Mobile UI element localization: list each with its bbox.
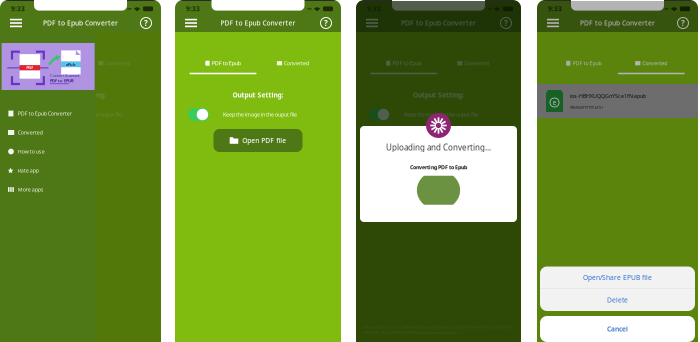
staticText: Output Setting:	[55, 91, 106, 99]
button[interactable]: Keep the image in the output file	[13, 108, 34, 121]
button[interactable]: Keep the image in the output file	[188, 108, 209, 121]
staticText: e	[552, 98, 556, 107]
button[interactable]: Converted	[0, 123, 96, 142]
button[interactable]: Rate app	[0, 161, 96, 180]
staticText: PDF to Epub Converter	[18, 110, 72, 117]
staticText: Document input: /Users/thanhhu/Library/D…	[363, 324, 514, 335]
staticText: Open PDF file	[423, 136, 467, 145]
button[interactable]: Converted	[80, 59, 148, 76]
staticText: How to use	[18, 148, 45, 155]
staticText: Converted	[464, 60, 489, 67]
button[interactable]: Menu	[541, 14, 565, 32]
button[interactable]: PDF to Epub	[369, 59, 438, 76]
staticText: PDF to Epub	[572, 60, 601, 67]
staticText: Output Setting:	[232, 91, 283, 99]
button[interactable]: Converted	[617, 59, 685, 76]
staticText: More apps	[18, 186, 44, 193]
staticText: PDF to EPUB	[50, 78, 74, 83]
button[interactable]: Keep the image in the output file	[369, 108, 390, 121]
staticText: Delete	[607, 296, 628, 304]
staticText: PDF	[26, 65, 33, 70]
staticText: Uploading and Converting...	[386, 142, 491, 153]
button[interactable]: Menu	[360, 14, 384, 32]
staticText: PDF to Epub Converter	[401, 19, 476, 27]
staticText: PDF to Epub	[392, 60, 421, 67]
button[interactable]: Help	[315, 14, 337, 32]
button[interactable]: PDF to Epub Converter	[0, 104, 96, 123]
staticText: 9:33	[186, 4, 200, 13]
staticText: PDF to Epub	[35, 60, 64, 67]
button[interactable]: Menu	[4, 14, 28, 32]
staticText: PDF to Epub Converter	[43, 19, 118, 27]
button[interactable]: e	[537, 84, 698, 118]
button[interactable]: Help	[495, 14, 517, 32]
staticText: Cancel	[607, 325, 628, 333]
button[interactable]: Help	[672, 14, 694, 32]
staticText: Converted	[18, 129, 43, 136]
button[interactable]: Open PDF file	[36, 129, 125, 152]
button[interactable]: Menu	[179, 14, 203, 32]
button[interactable]: Delete	[540, 289, 695, 311]
staticText: Rate app	[18, 167, 39, 174]
staticText: Open PDF file	[242, 136, 286, 145]
staticText: Convert Scanned	[50, 73, 79, 78]
button[interactable]: Help	[135, 14, 157, 32]
staticText: Converting PDF to Epub	[410, 164, 467, 171]
staticText: ?	[324, 18, 328, 28]
button[interactable]: How to use	[0, 142, 96, 161]
button[interactable]: Converted	[258, 59, 328, 76]
button[interactable]: PDF to Epub	[550, 59, 617, 76]
staticText: Converted	[105, 60, 130, 67]
staticText: PDF to Epub Converter	[580, 19, 655, 27]
staticText: ios-HBHXUQQGnYSce1fN.epub	[570, 92, 646, 99]
staticText: Converted	[642, 60, 667, 67]
staticText: Open/Share EPUB file	[583, 273, 652, 282]
staticText: Open PDF file	[65, 136, 109, 145]
staticText: ?	[144, 18, 148, 28]
staticText: ePub	[66, 62, 76, 67]
staticText: 9:33	[548, 4, 562, 13]
staticText: 9:33	[367, 4, 381, 13]
button[interactable]: Cancel	[540, 316, 695, 342]
staticText: ?	[681, 18, 685, 28]
button[interactable]: Open PDF file	[394, 129, 483, 152]
staticText: Converted	[284, 60, 309, 67]
button[interactable]: Open PDF file	[213, 129, 302, 152]
button[interactable]: Converted	[438, 59, 508, 76]
staticText: Keep the image in the ouput file	[404, 111, 478, 118]
staticText: 9:33	[11, 4, 25, 13]
button[interactable]: More apps	[0, 180, 96, 199]
button[interactable]: Open/Share EPUB file	[540, 266, 695, 288]
button[interactable]: PDF to Epub	[188, 59, 258, 76]
button[interactable]: PDF to Epub	[13, 59, 80, 76]
staticText: 08/26/2019 09:33:51	[570, 104, 603, 110]
staticText: Keep the image in the ouput file	[223, 111, 297, 118]
staticText: PDF to Epub	[212, 60, 241, 67]
staticText: Keep the image in the ouput file	[48, 111, 122, 118]
staticText: PDF to Epub Converter	[220, 19, 295, 27]
staticText: ?	[504, 18, 508, 28]
staticText: Output Setting:	[413, 91, 464, 99]
